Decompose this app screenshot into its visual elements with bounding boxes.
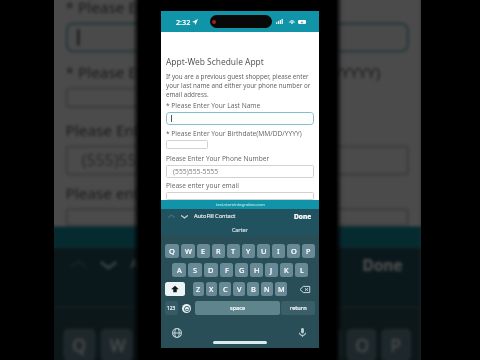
- button[interactable]: return: [281, 301, 315, 315]
- staticText: test.storeintegration.com: [216, 202, 265, 208]
- button[interactable]: Q: [165, 244, 179, 258]
- button[interactable]: E: [137, 329, 168, 360]
- button[interactable]: W: [181, 244, 195, 258]
- button[interactable]: space: [195, 301, 280, 315]
- button[interactable]: U: [257, 244, 270, 258]
- button[interactable]: P: [381, 329, 411, 360]
- staticText: B: [251, 284, 256, 294]
- staticText: L: [300, 265, 304, 275]
- button[interactable]: R: [212, 244, 225, 258]
- button[interactable]: Done: [292, 210, 314, 223]
- button[interactable]: I: [272, 244, 285, 258]
- staticText: C: [223, 284, 228, 294]
- staticText: Please Enter Your Phone Number: [66, 120, 307, 141]
- button[interactable]: [166, 192, 314, 200]
- button[interactable]: G: [235, 263, 248, 277]
- button[interactable]: L: [295, 263, 308, 277]
- staticText: return: [290, 304, 307, 312]
- button[interactable]: Backspace: [295, 282, 315, 296]
- button[interactable]: E: [197, 244, 210, 258]
- button[interactable]: [66, 22, 409, 52]
- button[interactable]: 123: [165, 301, 178, 315]
- staticText: X: [209, 284, 214, 294]
- staticText: Carter: [219, 287, 256, 303]
- button[interactable]: [66, 87, 163, 108]
- button[interactable]: H: [250, 263, 263, 277]
- button[interactable]: B: [247, 282, 259, 296]
- button[interactable]: I: [311, 329, 342, 360]
- button[interactable]: U: [277, 329, 307, 360]
- button[interactable]: Q: [63, 329, 96, 360]
- button[interactable]: A: [172, 263, 186, 277]
- staticText: Please enter your email: [166, 181, 239, 190]
- button[interactable]: R: [172, 329, 202, 360]
- button[interactable]: Carter: [161, 223, 319, 235]
- button[interactable]: P: [302, 244, 315, 258]
- staticText: G: [239, 265, 245, 275]
- staticText: R: [216, 246, 221, 256]
- staticText: Z: [196, 284, 201, 294]
- button[interactable]: N: [261, 282, 273, 296]
- staticText: J: [270, 265, 273, 275]
- staticText: 2:32: [176, 17, 191, 27]
- staticText: * Please Enter Your Last Name: [166, 101, 261, 110]
- staticText: A: [177, 265, 182, 275]
- button[interactable]: D: [204, 263, 218, 277]
- staticText: H: [254, 265, 260, 275]
- staticText: Q: [169, 246, 175, 256]
- staticText: Appt-Web Schedule Appt: [166, 56, 264, 67]
- button[interactable]: Dictation: [297, 327, 308, 338]
- button[interactable]: (555)555-5555: [66, 145, 409, 175]
- button[interactable]: T: [207, 329, 237, 360]
- button[interactable]: M: [275, 282, 287, 296]
- button[interactable]: Next field: [96, 252, 121, 277]
- staticText: test.storeintegration.com: [182, 231, 295, 245]
- button[interactable]: Change keyboard language: [172, 328, 182, 338]
- staticText: P: [390, 333, 402, 356]
- button[interactable]: O: [346, 329, 376, 360]
- button[interactable]: (555)555-5555: [166, 165, 314, 178]
- button[interactable]: Next field: [179, 211, 190, 222]
- staticText: * Please Enter Your Birthdate(MM/DD/YYYY…: [166, 129, 302, 138]
- button[interactable]: W: [100, 329, 133, 360]
- staticText: space: [230, 304, 246, 312]
- staticText: T: [231, 246, 236, 256]
- staticText: AutoFill Contact: [194, 212, 236, 220]
- button[interactable]: K: [280, 263, 293, 277]
- button[interactable]: Z: [193, 282, 204, 296]
- button[interactable]: Done: [358, 250, 409, 280]
- staticText: (555)555-5555: [173, 167, 219, 176]
- staticText: 123: [167, 305, 176, 312]
- staticText: P: [306, 246, 311, 256]
- button[interactable]: V: [233, 282, 245, 296]
- staticText: Y: [251, 333, 263, 356]
- button[interactable]: [166, 112, 314, 125]
- staticText: F: [225, 265, 229, 275]
- button[interactable]: S: [188, 263, 202, 277]
- button[interactable]: X: [206, 282, 217, 296]
- button[interactable]: F: [220, 263, 233, 277]
- staticText: M: [278, 284, 285, 294]
- button[interactable]: O: [287, 244, 300, 258]
- staticText: D: [208, 265, 214, 275]
- button[interactable]: Y: [242, 244, 255, 258]
- button[interactable]: T: [227, 244, 240, 258]
- button[interactable]: [166, 140, 208, 149]
- button[interactable]: Previous field: [166, 211, 177, 222]
- button[interactable]: J: [265, 263, 278, 277]
- button[interactable]: Y: [242, 329, 272, 360]
- staticText: I: [277, 246, 280, 256]
- staticText: N: [264, 284, 270, 294]
- staticText: If you are a previous guest shopper, ple…: [166, 72, 314, 99]
- button[interactable]: C: [219, 282, 231, 296]
- staticText: O: [291, 246, 297, 256]
- staticText: W: [110, 333, 126, 356]
- button[interactable]: Carter: [54, 280, 421, 308]
- button[interactable]: Emoji: [182, 304, 191, 313]
- button[interactable]: [66, 208, 409, 226]
- staticText: W: [185, 246, 192, 256]
- button[interactable]: Shift: [165, 282, 185, 296]
